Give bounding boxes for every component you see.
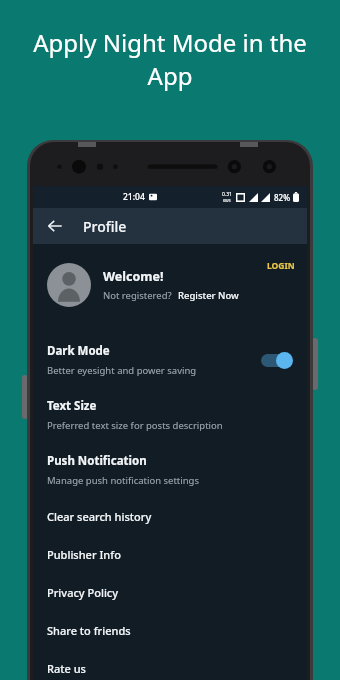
staticText: Register Now	[178, 289, 239, 302]
staticText: Clear search history	[47, 509, 152, 524]
staticText: Profile	[83, 217, 127, 236]
button[interactable]: Privacy Policy	[33, 573, 307, 611]
staticText: 0.31	[222, 191, 232, 198]
staticText: Apply Night Mode in the App	[16, 26, 324, 92]
staticText: Not registered?	[103, 289, 172, 302]
button[interactable]: LOGIN	[267, 260, 295, 272]
staticText: Privacy Policy	[47, 585, 119, 600]
staticText: Manage push notification settings	[47, 474, 199, 487]
button[interactable]: Rate us	[33, 649, 307, 680]
staticText: Preferred text size for posts descriptio…	[47, 419, 223, 432]
staticText: Welcome!	[103, 268, 164, 285]
button[interactable]: Text Size	[33, 387, 307, 442]
staticText: Share to friends	[47, 623, 131, 638]
staticText: Dark Mode	[47, 343, 110, 359]
staticText: Better eyesight and power saving	[47, 364, 197, 377]
button[interactable]: Dark Mode	[33, 332, 307, 387]
staticText: Push Notification	[47, 453, 147, 469]
staticText: Rate us	[47, 661, 86, 676]
staticText: 82%	[274, 192, 290, 203]
staticText: KB/S	[223, 198, 231, 203]
button[interactable]: Clear search history	[33, 497, 307, 535]
staticText: LOGIN	[267, 260, 295, 272]
button[interactable]: Share to friends	[33, 611, 307, 649]
button[interactable]: Push Notification	[33, 442, 307, 497]
staticText: 21:04	[123, 191, 145, 203]
button[interactable]: Dark Mode toggle	[259, 351, 293, 369]
staticText: Publisher Info	[47, 547, 121, 562]
staticText: Text Size	[47, 398, 97, 414]
button[interactable]: Back	[39, 210, 71, 242]
button[interactable]: Register Now	[178, 289, 239, 302]
button[interactable]: Publisher Info	[33, 535, 307, 573]
